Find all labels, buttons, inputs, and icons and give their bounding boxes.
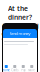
button[interactable]: More — [27, 63, 36, 72]
staticText: Send money — [9, 31, 30, 36]
staticText: Rs to Brid — [4, 39, 35, 48]
button[interactable]: Cards — [10, 63, 19, 72]
button[interactable]: Pay — [19, 63, 27, 72]
staticText: Home — [2, 68, 10, 72]
staticText: Ask to send your — [1, 22, 38, 39]
button[interactable]: Home — [2, 63, 10, 72]
staticText: More — [28, 68, 35, 72]
staticText: At the dinner? — [8, 4, 32, 22]
staticText: Cards — [11, 68, 18, 72]
staticText: Pay — [21, 68, 25, 72]
